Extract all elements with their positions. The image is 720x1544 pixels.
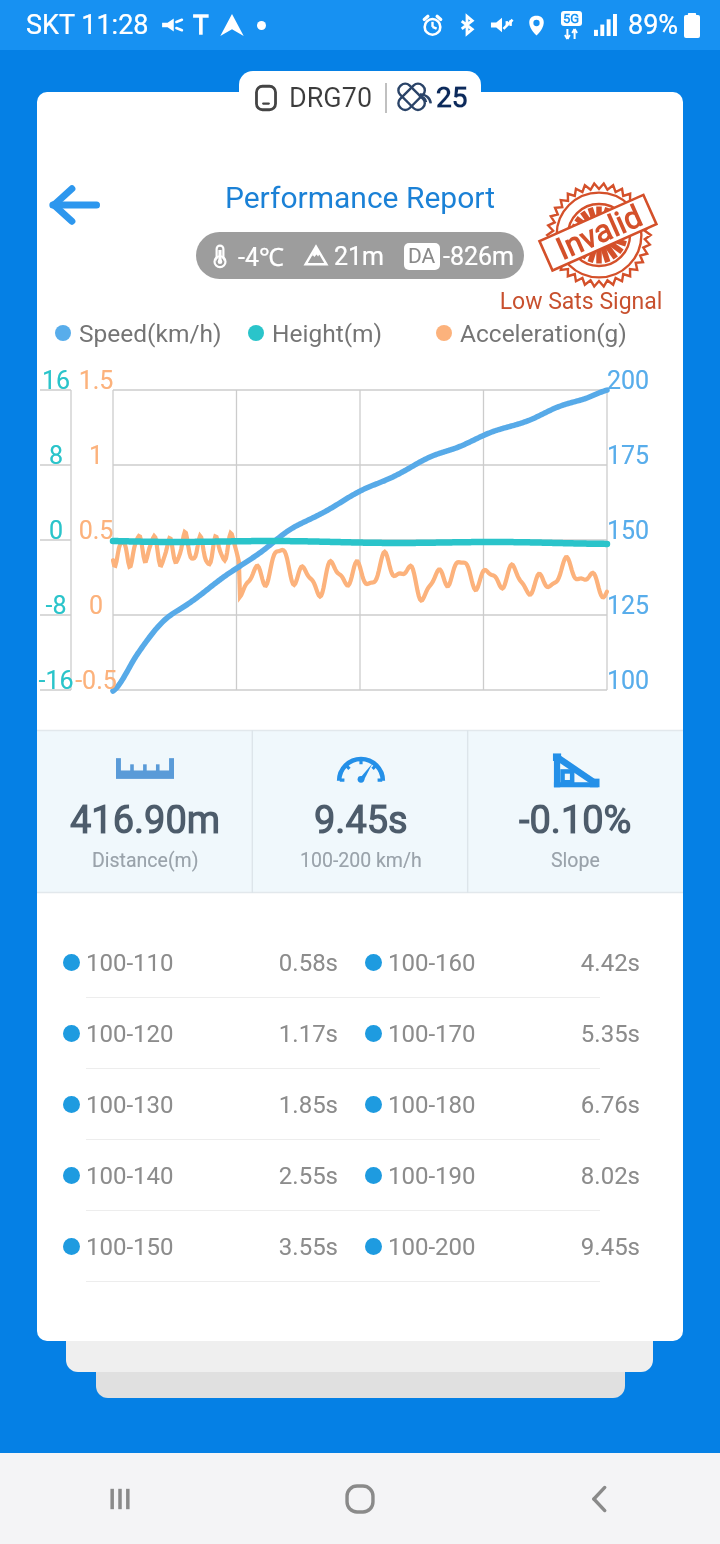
button[interactable]: 100-130 bbox=[37, 1069, 683, 1140]
staticText: 100-150 bbox=[86, 1233, 174, 1261]
staticText: 200 bbox=[607, 366, 683, 395]
staticText: 100-120 bbox=[86, 1020, 174, 1048]
staticText: T bbox=[193, 10, 209, 40]
staticText: 150 bbox=[607, 516, 683, 545]
staticText: 125 bbox=[607, 591, 683, 620]
staticText: 100-170 bbox=[388, 1020, 476, 1048]
button[interactable]: 100-110 bbox=[37, 927, 683, 998]
staticText: 100-110 bbox=[86, 949, 174, 977]
staticText: 1 bbox=[46, 441, 146, 470]
staticText: 9.45s bbox=[480, 1233, 640, 1261]
staticText: 100-200 bbox=[388, 1233, 476, 1261]
staticText: 100-200 km/h bbox=[300, 849, 422, 872]
staticText: 89% bbox=[628, 9, 679, 41]
staticText: Speed(km/h) bbox=[79, 319, 222, 348]
staticText: 100-190 bbox=[388, 1162, 476, 1190]
staticText: 1.85s bbox=[178, 1091, 338, 1119]
staticText: 0.5 bbox=[46, 516, 146, 545]
staticText: 100-130 bbox=[86, 1091, 174, 1119]
button[interactable]: 100-120 bbox=[37, 998, 683, 1069]
button[interactable]: 9.45s bbox=[253, 730, 468, 893]
button[interactable]: 100-150 bbox=[37, 1211, 683, 1282]
staticText: 0 bbox=[46, 591, 146, 620]
button[interactable]: 416.90m bbox=[37, 730, 253, 893]
staticText: Distance(m) bbox=[92, 849, 199, 872]
staticText: Slope bbox=[551, 849, 600, 872]
staticText: -826m bbox=[443, 242, 514, 271]
staticText: -0.10% bbox=[519, 798, 632, 843]
staticText: 0 bbox=[37, 516, 106, 545]
staticText: 100 bbox=[607, 666, 683, 695]
staticText: SKT 11:28 bbox=[26, 9, 149, 41]
staticText: DA bbox=[408, 244, 436, 269]
staticText: 4.42s bbox=[480, 949, 640, 977]
staticText: 0.58s bbox=[178, 949, 338, 977]
staticText: 5G bbox=[563, 11, 580, 26]
staticText: 175 bbox=[607, 441, 683, 470]
staticText: 8 bbox=[37, 441, 106, 470]
staticText: 8.02s bbox=[480, 1162, 640, 1190]
staticText: -0.5 bbox=[46, 666, 146, 695]
staticText: 416.90m bbox=[70, 798, 221, 843]
staticText: 6.76s bbox=[480, 1091, 640, 1119]
staticText: 25 bbox=[436, 81, 468, 114]
button[interactable]: Back bbox=[45, 177, 101, 233]
staticText: 16 bbox=[37, 366, 106, 395]
button[interactable]: Recent apps bbox=[0, 1453, 240, 1544]
staticText: -4℃ bbox=[238, 239, 284, 273]
staticText: 9.45s bbox=[314, 798, 408, 843]
button[interactable]: 100-140 bbox=[37, 1140, 683, 1211]
staticText: 1.5 bbox=[46, 366, 146, 395]
staticText: 21m bbox=[334, 242, 385, 271]
staticText: 100-140 bbox=[86, 1162, 174, 1190]
staticText: Height(m) bbox=[272, 319, 383, 348]
button[interactable]: -0.10% bbox=[468, 730, 683, 893]
staticText: 2.55s bbox=[178, 1162, 338, 1190]
staticText: Invalid bbox=[491, 171, 683, 293]
staticText: Acceleration(g) bbox=[460, 319, 627, 348]
staticText: Performance Report bbox=[37, 180, 683, 215]
staticText: -8 bbox=[37, 591, 106, 620]
staticText: 100-160 bbox=[388, 949, 476, 977]
staticText: Low Sats Signal bbox=[481, 288, 681, 315]
staticText: 3.55s bbox=[178, 1233, 338, 1261]
staticText: -16 bbox=[37, 666, 106, 695]
button[interactable]: Home bbox=[240, 1453, 480, 1544]
staticText: DRG70 bbox=[289, 82, 373, 114]
button[interactable]: DRG70 bbox=[239, 71, 481, 123]
staticText: 100-180 bbox=[388, 1091, 476, 1119]
staticText: 5.35s bbox=[480, 1020, 640, 1048]
staticText: 1.17s bbox=[178, 1020, 338, 1048]
button[interactable]: Back bbox=[480, 1453, 720, 1544]
